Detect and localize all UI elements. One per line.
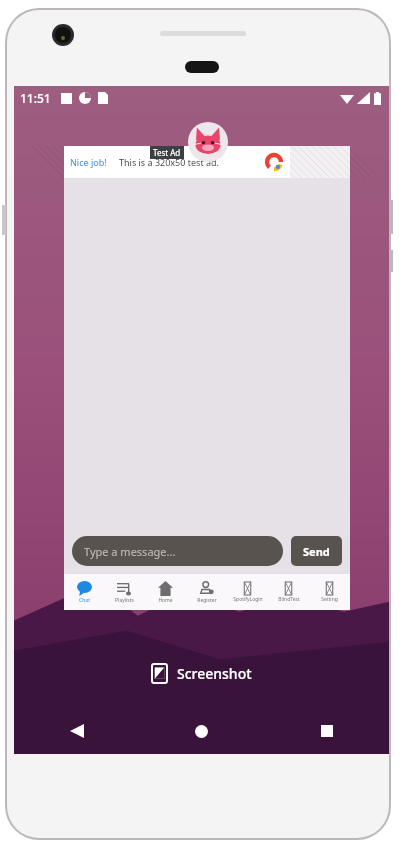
staticText: Playlists xyxy=(115,597,134,604)
button[interactable]: SpotifyLogin xyxy=(227,574,268,610)
staticText: SpotifyLogin xyxy=(233,596,263,603)
staticText: BlindTest xyxy=(278,596,300,603)
button[interactable]: Recents xyxy=(264,708,389,754)
button[interactable]: Profile avatar xyxy=(188,122,228,162)
button[interactable]: Chat xyxy=(64,574,104,610)
button[interactable]: Register xyxy=(186,574,227,610)
button[interactable]: Home xyxy=(145,574,186,610)
staticText: Chat xyxy=(79,597,90,604)
staticText: Setting xyxy=(321,596,338,603)
button[interactable]: Send xyxy=(291,536,342,566)
staticText: Nice job! xyxy=(70,156,107,168)
button[interactable]: BlindTest xyxy=(268,574,309,610)
button[interactable]: Back xyxy=(14,708,139,754)
button[interactable]: Type a message... xyxy=(72,536,283,566)
button[interactable]: Playlists xyxy=(104,574,145,610)
staticText: Type a message... xyxy=(84,544,176,559)
staticText: Register xyxy=(197,597,217,604)
staticText: Screenshot xyxy=(177,664,252,683)
button[interactable]: Home xyxy=(139,708,264,754)
button[interactable]: Setting xyxy=(309,574,350,610)
staticText: Send xyxy=(303,544,330,559)
staticText: 11:51 xyxy=(20,90,51,106)
staticText: Test Ad xyxy=(153,147,181,158)
staticText: This is a 320x50 test ad. xyxy=(119,156,219,168)
staticText: Home xyxy=(158,597,173,604)
